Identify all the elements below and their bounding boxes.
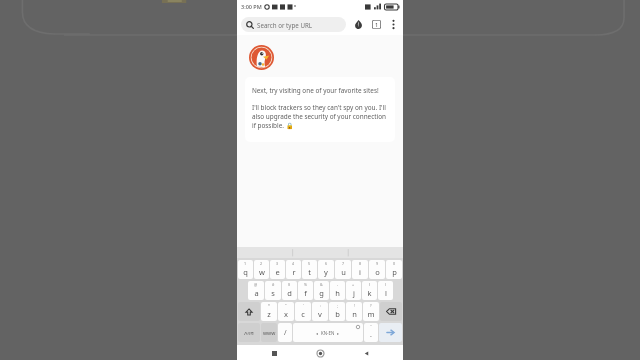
staticText: y: [324, 267, 328, 277]
staticText: 1: [244, 261, 247, 266]
button[interactable]: ᐱባሻ: [238, 323, 260, 342]
button[interactable]: Back: [359, 346, 373, 360]
staticText: o: [375, 267, 380, 277]
staticText: &: [320, 282, 323, 287]
button[interactable]: @: [248, 281, 264, 300]
button[interactable]: 5: [302, 260, 317, 279]
staticText: @: [254, 282, 258, 287]
button[interactable]: 2: [254, 260, 269, 279]
button[interactable]: 3: [270, 260, 285, 279]
button[interactable]: Fire Button, clear tabs and data: [350, 16, 366, 32]
staticText: 4: [292, 261, 295, 266]
staticText: $: [288, 282, 291, 287]
staticText: x: [284, 309, 288, 319]
staticText: :: [320, 303, 321, 308]
staticText: KN-EN: [321, 330, 335, 336]
button[interactable]: ": [278, 302, 294, 321]
staticText: *: [268, 303, 270, 308]
button[interactable]: (: [362, 281, 377, 300]
staticText: b: [335, 309, 340, 319]
staticText: 2: [260, 261, 263, 266]
button[interactable]: Shift: [238, 302, 260, 321]
button[interactable]: Tabs, 1 open: [368, 16, 384, 32]
button[interactable]: Next, try visiting one of your favorite …: [245, 77, 395, 142]
button[interactable]: *: [261, 302, 277, 321]
button[interactable]: %: [298, 281, 313, 300]
button[interactable]: Search or type URL: [241, 17, 346, 32]
button[interactable]: Space: [293, 323, 363, 342]
button[interactable]: 7: [335, 260, 351, 279]
staticText: k: [367, 288, 372, 298]
button[interactable]: :: [312, 302, 328, 321]
staticText: m: [367, 309, 375, 319]
staticText: ▸: [337, 331, 340, 336]
staticText: !: [354, 303, 355, 308]
staticText: v: [318, 309, 322, 319]
button[interactable]: ;: [329, 302, 345, 321]
button[interactable]: /: [278, 323, 292, 342]
staticText: s: [271, 288, 275, 298]
staticText: /: [284, 328, 287, 338]
staticText: l: [385, 288, 387, 298]
staticText: c: [301, 309, 305, 319]
button[interactable]: 8: [352, 260, 368, 279]
button[interactable]: &: [314, 281, 329, 300]
staticText: 6: [325, 261, 328, 266]
staticText: n: [352, 309, 357, 319]
staticText: ?: [370, 303, 372, 308]
staticText: 1: [375, 21, 379, 28]
button[interactable]: ?: [363, 302, 379, 321]
staticText: Search or type URL: [257, 21, 313, 29]
button[interactable]: ): [378, 281, 393, 300]
button[interactable]: 9: [369, 260, 385, 279]
staticText: f: [304, 288, 307, 298]
staticText: #: [272, 282, 275, 287]
button[interactable]: -: [330, 281, 345, 300]
button[interactable]: 1: [238, 260, 253, 279]
button[interactable]: 4: [286, 260, 301, 279]
staticText: a: [254, 288, 259, 298]
staticText: 9: [376, 261, 379, 266]
staticText: -: [337, 282, 339, 287]
staticText: I'll block trackers so they can't spy on…: [252, 103, 388, 130]
staticText: +: [352, 282, 355, 287]
staticText: d: [287, 288, 292, 298]
staticText: ◂: [316, 331, 319, 336]
button[interactable]: More options: [385, 16, 401, 32]
button[interactable]: #: [265, 281, 281, 300]
button[interactable]: +: [346, 281, 361, 300]
staticText: h: [335, 288, 340, 298]
button[interactable]: 0: [386, 260, 402, 279]
staticText: 3:00 PM: [241, 3, 262, 10]
staticText: ;: [337, 303, 338, 308]
button[interactable]: Recent apps: [267, 346, 281, 360]
staticText: p: [392, 267, 397, 277]
staticText: g: [319, 288, 324, 298]
button[interactable]: 6: [318, 260, 334, 279]
staticText: w: [259, 267, 265, 277]
button[interactable]: ': [295, 302, 311, 321]
button[interactable]: www: [261, 323, 277, 342]
staticText: ": [285, 303, 287, 308]
staticText: 3: [276, 261, 279, 266]
staticText: %: [304, 282, 307, 287]
button[interactable]: Home: [313, 346, 327, 360]
button[interactable]: Backspace: [380, 302, 402, 321]
button[interactable]: Go: [379, 323, 402, 342]
button[interactable]: Period: [364, 323, 378, 342]
button[interactable]: !: [346, 302, 362, 321]
staticText: j: [353, 288, 355, 298]
staticText: 0: [393, 261, 396, 266]
staticText: t: [308, 267, 311, 277]
staticText: q: [243, 267, 248, 277]
staticText: 7: [342, 261, 345, 266]
staticText: i: [359, 267, 361, 277]
staticText: 5: [308, 261, 311, 266]
staticText: Next, try visiting one of your favorite …: [252, 86, 379, 95]
staticText: z: [267, 309, 271, 319]
staticText: .: [370, 330, 372, 340]
staticText: '': [370, 324, 372, 329]
button[interactable]: $: [282, 281, 297, 300]
staticText: www: [263, 329, 276, 336]
staticText: 8: [359, 261, 362, 266]
